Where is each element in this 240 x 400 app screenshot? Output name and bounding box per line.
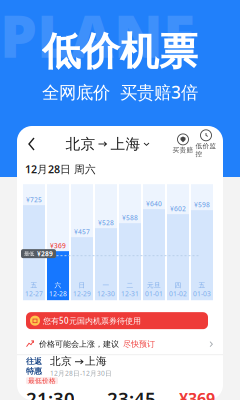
staticText: 五 bbox=[30, 281, 37, 289]
button[interactable]: 买贵赔 bbox=[172, 134, 194, 154]
staticText: 二 bbox=[126, 281, 133, 289]
staticText: ¥528 bbox=[98, 218, 114, 227]
staticText: ¥369 bbox=[179, 388, 215, 400]
staticText: 元旦 bbox=[147, 281, 161, 289]
staticText: 12-30 bbox=[97, 289, 115, 298]
button[interactable]: 五 bbox=[191, 184, 213, 300]
button[interactable]: 往返 bbox=[17, 355, 223, 377]
staticText: ¥598 bbox=[194, 200, 210, 209]
button[interactable]: 四 bbox=[167, 184, 189, 300]
staticText: 12-29 bbox=[73, 289, 91, 298]
staticText: 23:45 bbox=[107, 386, 156, 400]
staticText: 12月28日 周六 bbox=[25, 162, 96, 176]
button[interactable]: 六 bbox=[47, 184, 69, 300]
button[interactable]: 价格可能会上涨，建议 bbox=[17, 334, 223, 354]
button[interactable]: 一 bbox=[95, 184, 117, 300]
staticText: 12-28 bbox=[49, 289, 67, 298]
button[interactable]: 低价监控 bbox=[194, 130, 218, 158]
staticText: 低价机票 bbox=[42, 28, 198, 75]
staticText: 上海 bbox=[85, 355, 107, 368]
staticText: 12-27 bbox=[25, 289, 43, 298]
button[interactable]: 您有50元国内机票券待使用 bbox=[26, 312, 208, 329]
button[interactable]: 元旦 bbox=[143, 184, 165, 300]
staticText: ¥457 bbox=[74, 227, 90, 236]
staticText: 北京 bbox=[65, 135, 95, 153]
staticText: ¥588 bbox=[122, 213, 138, 222]
staticText: 一 bbox=[102, 281, 109, 289]
staticText: 低价监控 bbox=[195, 142, 216, 158]
staticText: 01-01 bbox=[145, 289, 163, 298]
staticText: 21:30 bbox=[26, 386, 75, 400]
staticText: 上海 bbox=[110, 135, 140, 153]
staticText: 12-31 bbox=[121, 289, 139, 298]
staticText: 六 bbox=[54, 281, 61, 289]
button[interactable]: 北京 bbox=[65, 135, 149, 153]
staticText: 尽快预订 bbox=[123, 339, 155, 349]
staticText: 01-03 bbox=[193, 289, 211, 298]
staticText: 价格可能会上涨，建议 bbox=[39, 339, 119, 349]
staticText: 北京 bbox=[50, 355, 72, 368]
staticText: 往返 bbox=[26, 356, 42, 366]
staticText: 特惠 bbox=[26, 366, 42, 376]
staticText: 01-02 bbox=[169, 289, 187, 298]
staticText: 四 bbox=[174, 281, 181, 289]
staticText: ¥369 bbox=[50, 241, 66, 250]
button[interactable]: 返回 bbox=[23, 129, 43, 159]
staticText: 日 bbox=[78, 281, 85, 289]
staticText: 最低 bbox=[24, 250, 34, 257]
button[interactable]: 最低价格 bbox=[17, 377, 223, 400]
staticText: ¥289 bbox=[37, 249, 53, 258]
staticText: 买贵赔 bbox=[172, 146, 193, 154]
staticText: 五 bbox=[198, 281, 205, 289]
staticText: ¥725 bbox=[26, 195, 42, 204]
staticText: 全网底价 买贵赔3倍 bbox=[42, 80, 198, 103]
staticText: PLANE bbox=[0, 0, 195, 74]
button[interactable]: 五 bbox=[23, 184, 45, 300]
button[interactable]: 二 bbox=[119, 184, 141, 300]
staticText: ¥602 bbox=[170, 204, 186, 213]
staticText: 最低价格 bbox=[28, 377, 56, 385]
button[interactable]: 日 bbox=[71, 184, 93, 300]
staticText: ¥640 bbox=[146, 199, 162, 208]
staticText: 您有50元国内机票券待使用 bbox=[43, 315, 141, 326]
staticText: 12月28日-12月30日 bbox=[50, 369, 112, 378]
